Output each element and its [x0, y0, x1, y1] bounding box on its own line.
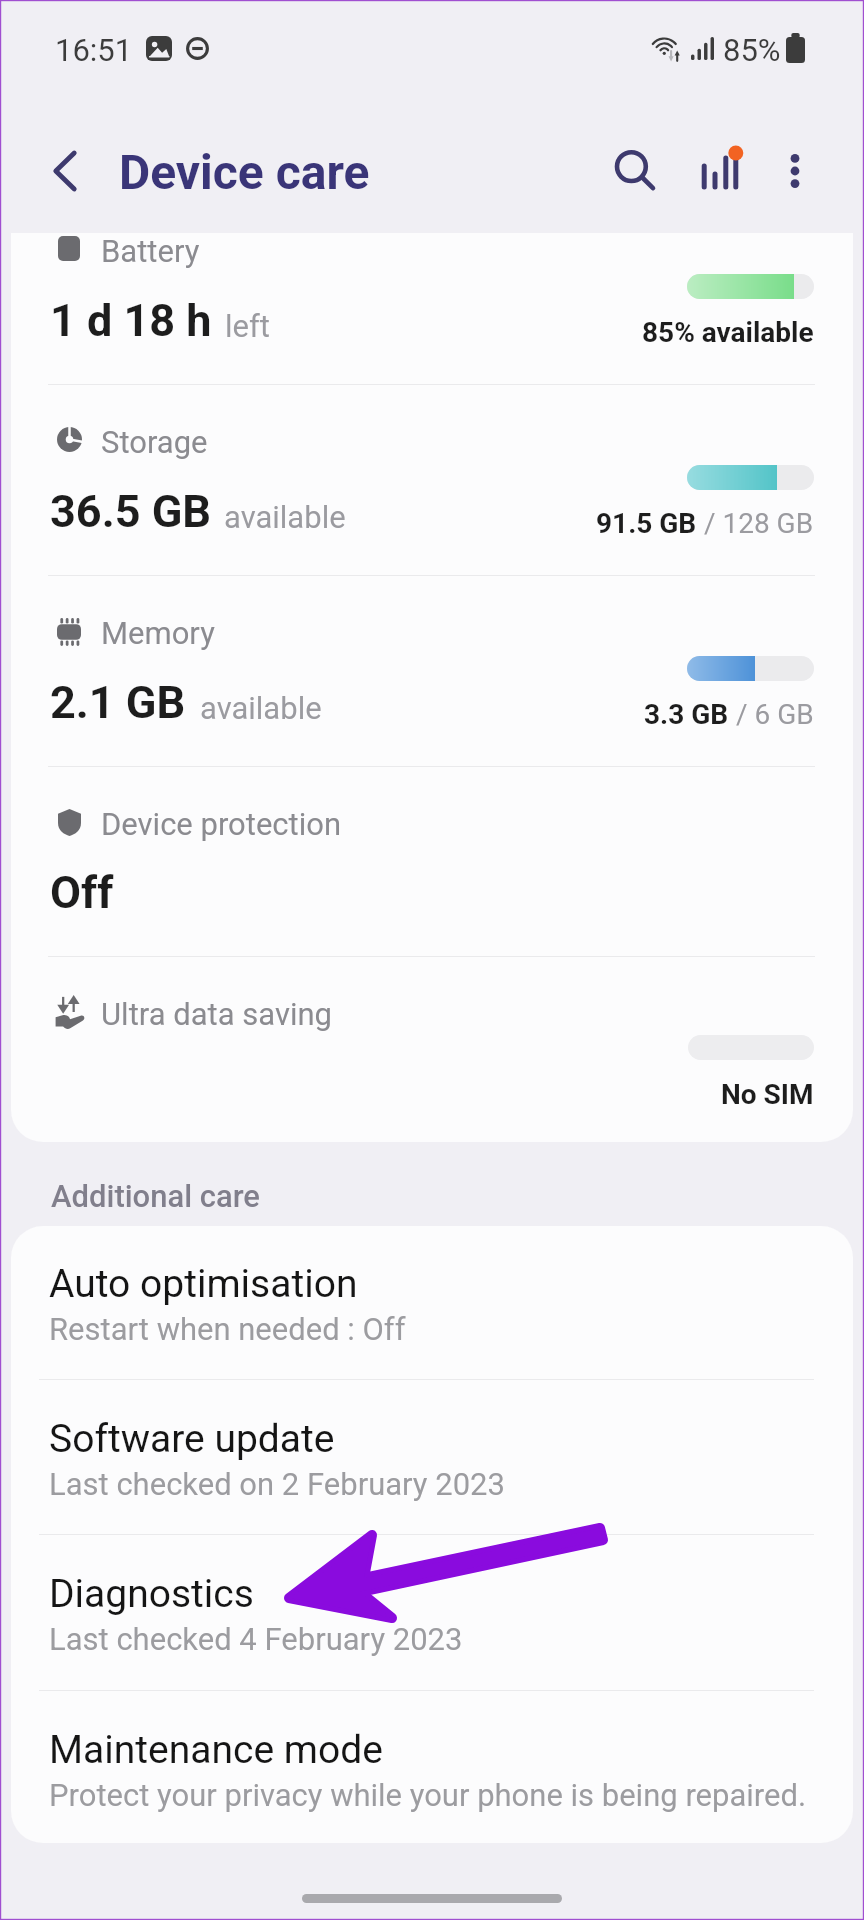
staticText: Storage: [101, 424, 208, 460]
staticText: Auto optimisation: [49, 1261, 358, 1307]
button[interactable]: [11, 1224, 853, 1379]
button[interactable]: Navigate up: [33, 139, 97, 203]
staticText: 2.1 GB: [50, 676, 186, 729]
staticText: 1 d 18 h: [50, 294, 212, 347]
staticText: 91.5 GB: [596, 507, 697, 540]
staticText: Device protection: [101, 806, 342, 842]
staticText: 3.3 GB: [644, 698, 729, 731]
staticText: Additional care: [51, 1178, 260, 1214]
staticText: / 128 GB: [697, 507, 814, 540]
button[interactable]: [11, 384, 853, 575]
button[interactable]: [11, 1690, 853, 1843]
staticText: 16:51: [55, 32, 133, 68]
staticText: available: [224, 499, 346, 535]
button[interactable]: [11, 766, 853, 956]
staticText: / 6 GB: [729, 698, 814, 731]
button[interactable]: [11, 1379, 853, 1534]
staticText: Diagnostics: [49, 1571, 254, 1617]
button[interactable]: [11, 1534, 853, 1690]
button[interactable]: More options: [762, 138, 828, 204]
staticText: available: [200, 690, 322, 726]
staticText: 85%: [723, 32, 781, 68]
staticText: Battery: [101, 233, 200, 269]
staticText: Restart when needed : Off: [49, 1311, 406, 1347]
staticText: No SIM: [721, 1078, 814, 1111]
staticText: 36.5 GB: [50, 485, 212, 538]
staticText: Memory: [101, 615, 215, 651]
button[interactable]: Usage statistics: [687, 138, 753, 204]
staticText: Ultra data saving: [101, 996, 332, 1032]
staticText: Last checked 4 February 2023: [49, 1621, 463, 1657]
button[interactable]: Search: [602, 138, 668, 204]
staticText: left: [225, 308, 270, 344]
staticText: Last checked on 2 February 2023: [49, 1466, 505, 1502]
button[interactable]: [11, 575, 853, 766]
staticText: 85% available: [642, 316, 814, 349]
staticText: Maintenance mode: [49, 1727, 383, 1773]
button[interactable]: [11, 233, 853, 384]
staticText: Device care: [119, 144, 370, 200]
button[interactable]: [11, 956, 853, 1142]
staticText: Protect your privacy while your phone is…: [49, 1777, 807, 1813]
staticText: Software update: [49, 1416, 335, 1462]
staticText: Off: [50, 866, 114, 919]
